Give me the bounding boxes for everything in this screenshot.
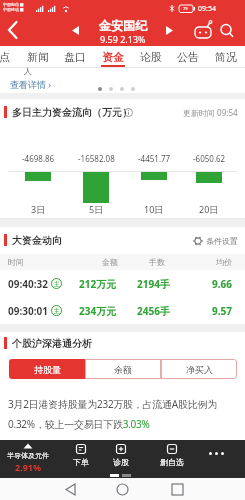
staticText: 中国移动 ■ [3, 7, 24, 12]
staticText: 均价 [216, 257, 232, 267]
staticText: 9.66 [212, 277, 232, 291]
button[interactable] [81, 478, 163, 500]
button[interactable]: 下单 [61, 440, 101, 478]
staticText: 新闻 [27, 50, 49, 64]
staticText: -16582.08 [78, 153, 115, 164]
staticText: 20日 [199, 203, 219, 215]
staticText: 半导体及元件 [7, 451, 49, 460]
staticText: 资金 [102, 50, 124, 64]
button[interactable]: 简况 [213, 46, 239, 68]
staticText: 234万元 [79, 304, 117, 318]
staticText: 下单 [73, 457, 89, 467]
staticText: 金额 [102, 257, 118, 267]
staticText: 点 [0, 50, 10, 64]
staticText: 2.91% [15, 461, 42, 473]
button[interactable]: 诊股 [101, 440, 141, 478]
button[interactable]: 盘口 [62, 46, 88, 68]
staticText: 212万元 [79, 277, 117, 291]
button[interactable]: 新闻 [25, 46, 51, 68]
staticText: 更新时间 09:54 [183, 107, 238, 118]
staticText: 持股量 [34, 364, 61, 375]
staticText: 0.32%，较上一交易日下跌3.03% [8, 417, 150, 431]
staticText: 个股沪深港通分析 [12, 337, 92, 350]
button[interactable]: 公告 [175, 46, 201, 68]
button[interactable] [192, 17, 214, 46]
staticText: -4698.86 [22, 153, 55, 164]
button[interactable]: 条件设置 [193, 236, 238, 246]
staticText: 盘口 [64, 50, 86, 64]
button[interactable]: 点 [0, 46, 17, 68]
staticText: 10日 [144, 203, 164, 215]
staticText: 删自选 [160, 457, 184, 467]
button[interactable] [0, 478, 81, 500]
staticText: 主 [54, 280, 60, 288]
button[interactable]: 余额 [85, 359, 161, 379]
staticText: 09:30:01 [8, 304, 48, 318]
button[interactable]: 半导体及元件 [0, 440, 58, 478]
staticText: 09:40:32 [8, 277, 48, 291]
staticText: 时间 [8, 257, 24, 267]
staticText: 公告 [177, 50, 199, 64]
staticText: 9.57 [212, 304, 232, 318]
button[interactable]: 查看详情 › [10, 76, 70, 91]
staticText: 金安国纪 [99, 18, 147, 33]
button[interactable] [0, 17, 30, 46]
staticText: 多日主力资金流向（万元） [12, 106, 132, 119]
staticText: 大资金动向 [12, 234, 62, 247]
button[interactable]: 净买入 [161, 359, 237, 379]
staticText: 主 [54, 307, 60, 315]
staticText: 条件设置 [206, 236, 238, 246]
staticText: 5日 [89, 203, 104, 215]
staticText: 3月2日港资持股量为232万股，占流通A股比例为 [8, 397, 217, 411]
staticText: 人 [24, 66, 32, 76]
button[interactable]: 资金 [100, 46, 126, 68]
staticText: -4451.77 [138, 153, 171, 164]
staticText: 79 [183, 6, 188, 11]
staticText: 论股 [140, 50, 162, 64]
staticText: 3日 [31, 203, 46, 215]
button[interactable]: 论股 [138, 46, 164, 68]
staticText: 中国电信 ■ [3, 2, 24, 7]
button[interactable] [163, 478, 245, 500]
staticText: 余额 [114, 364, 132, 375]
staticText: 09:54 [198, 4, 216, 14]
staticText: 诊股 [113, 457, 129, 467]
button[interactable]: 09:30:01 [0, 297, 245, 324]
staticText: 净买入 [186, 364, 213, 375]
button[interactable]: 删自选 [152, 440, 192, 478]
button[interactable]: 09:40:32 [0, 270, 245, 297]
staticText: 9.59 2.13% [100, 33, 146, 45]
staticText: 手数 [149, 257, 165, 267]
button[interactable]: 持股量 [9, 359, 85, 379]
staticText: 2194手 [137, 277, 170, 291]
staticText: -6050.62 [193, 153, 226, 164]
button[interactable] [216, 17, 240, 46]
staticText: 2456手 [137, 304, 170, 318]
staticText: 简况 [215, 50, 237, 64]
staticText: 查看详情 › [10, 78, 52, 90]
